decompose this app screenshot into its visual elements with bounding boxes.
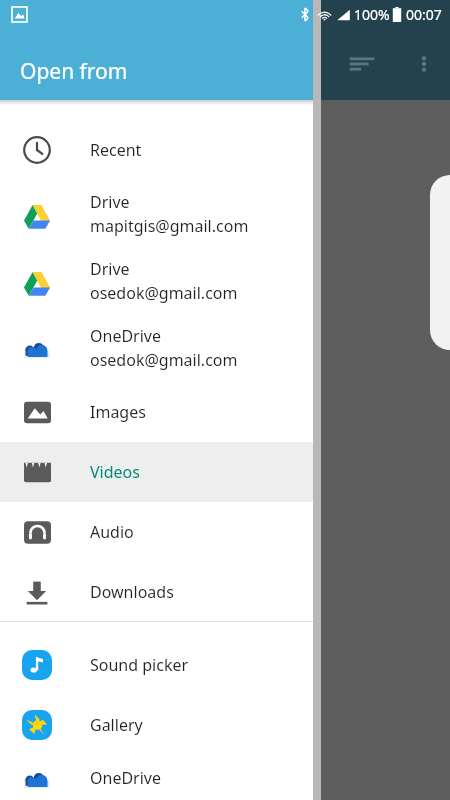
button[interactable]: Videos [0, 442, 313, 502]
staticText: Open from [20, 57, 128, 86]
staticText: Gallery [90, 714, 143, 736]
staticText: Downloads [90, 581, 174, 603]
button[interactable]: Downloads [0, 562, 313, 621]
button[interactable]: Drive [0, 180, 313, 247]
button[interactable]: Sound picker [0, 635, 313, 695]
staticText: OneDrive [90, 325, 161, 347]
staticText: 00:07 [406, 5, 442, 24]
staticText: osedok@gmail.com [90, 282, 238, 304]
button[interactable]: OneDrive [0, 314, 313, 382]
staticText: 100% [354, 5, 390, 24]
staticText: OneDrive [90, 767, 161, 789]
button[interactable]: More options [402, 42, 446, 86]
staticText: Drive [90, 258, 130, 280]
button[interactable]: Images [0, 382, 313, 442]
button[interactable]: Recent [0, 120, 313, 180]
button[interactable]: Audio [0, 502, 313, 562]
button[interactable]: Drive [0, 247, 313, 314]
staticText: osedok@gmail.com [90, 349, 238, 371]
button[interactable]: Gallery [0, 695, 313, 755]
staticText: Drive [90, 191, 130, 213]
staticText: Sound picker [90, 654, 189, 676]
staticText: Audio [90, 521, 134, 543]
button[interactable]: Sort [340, 42, 384, 86]
staticText: Recent [90, 139, 142, 161]
staticText: mapitgis@gmail.com [90, 215, 249, 237]
staticText: Images [90, 401, 146, 423]
button[interactable]: OneDrive [0, 755, 313, 800]
staticText: Videos [90, 461, 140, 483]
